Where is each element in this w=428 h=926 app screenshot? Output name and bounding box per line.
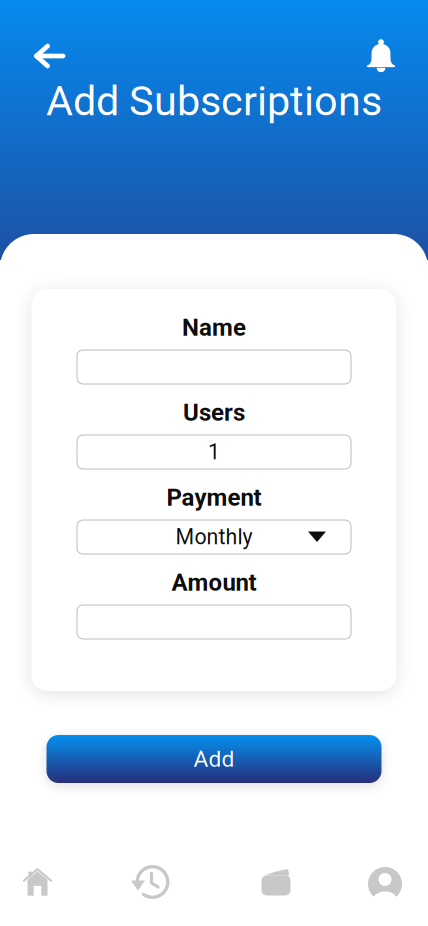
button[interactable]: Home [0,859,75,905]
staticText: Add Subscriptions [46,77,382,125]
staticText: Users [183,398,245,426]
staticText: Add [193,746,234,772]
staticText: Name [182,313,246,341]
staticText: Monthly [175,524,252,549]
button[interactable]: Notifications [366,38,396,73]
staticText: 1 [208,439,220,464]
button[interactable]: Wallet [226,859,326,905]
button[interactable]: Back [32,43,66,68]
staticText: Payment [166,483,261,511]
button[interactable]: Profile [326,859,428,905]
button[interactable]: History [75,859,226,905]
button[interactable]: Add [46,735,381,783]
staticText: Amount [171,568,256,596]
